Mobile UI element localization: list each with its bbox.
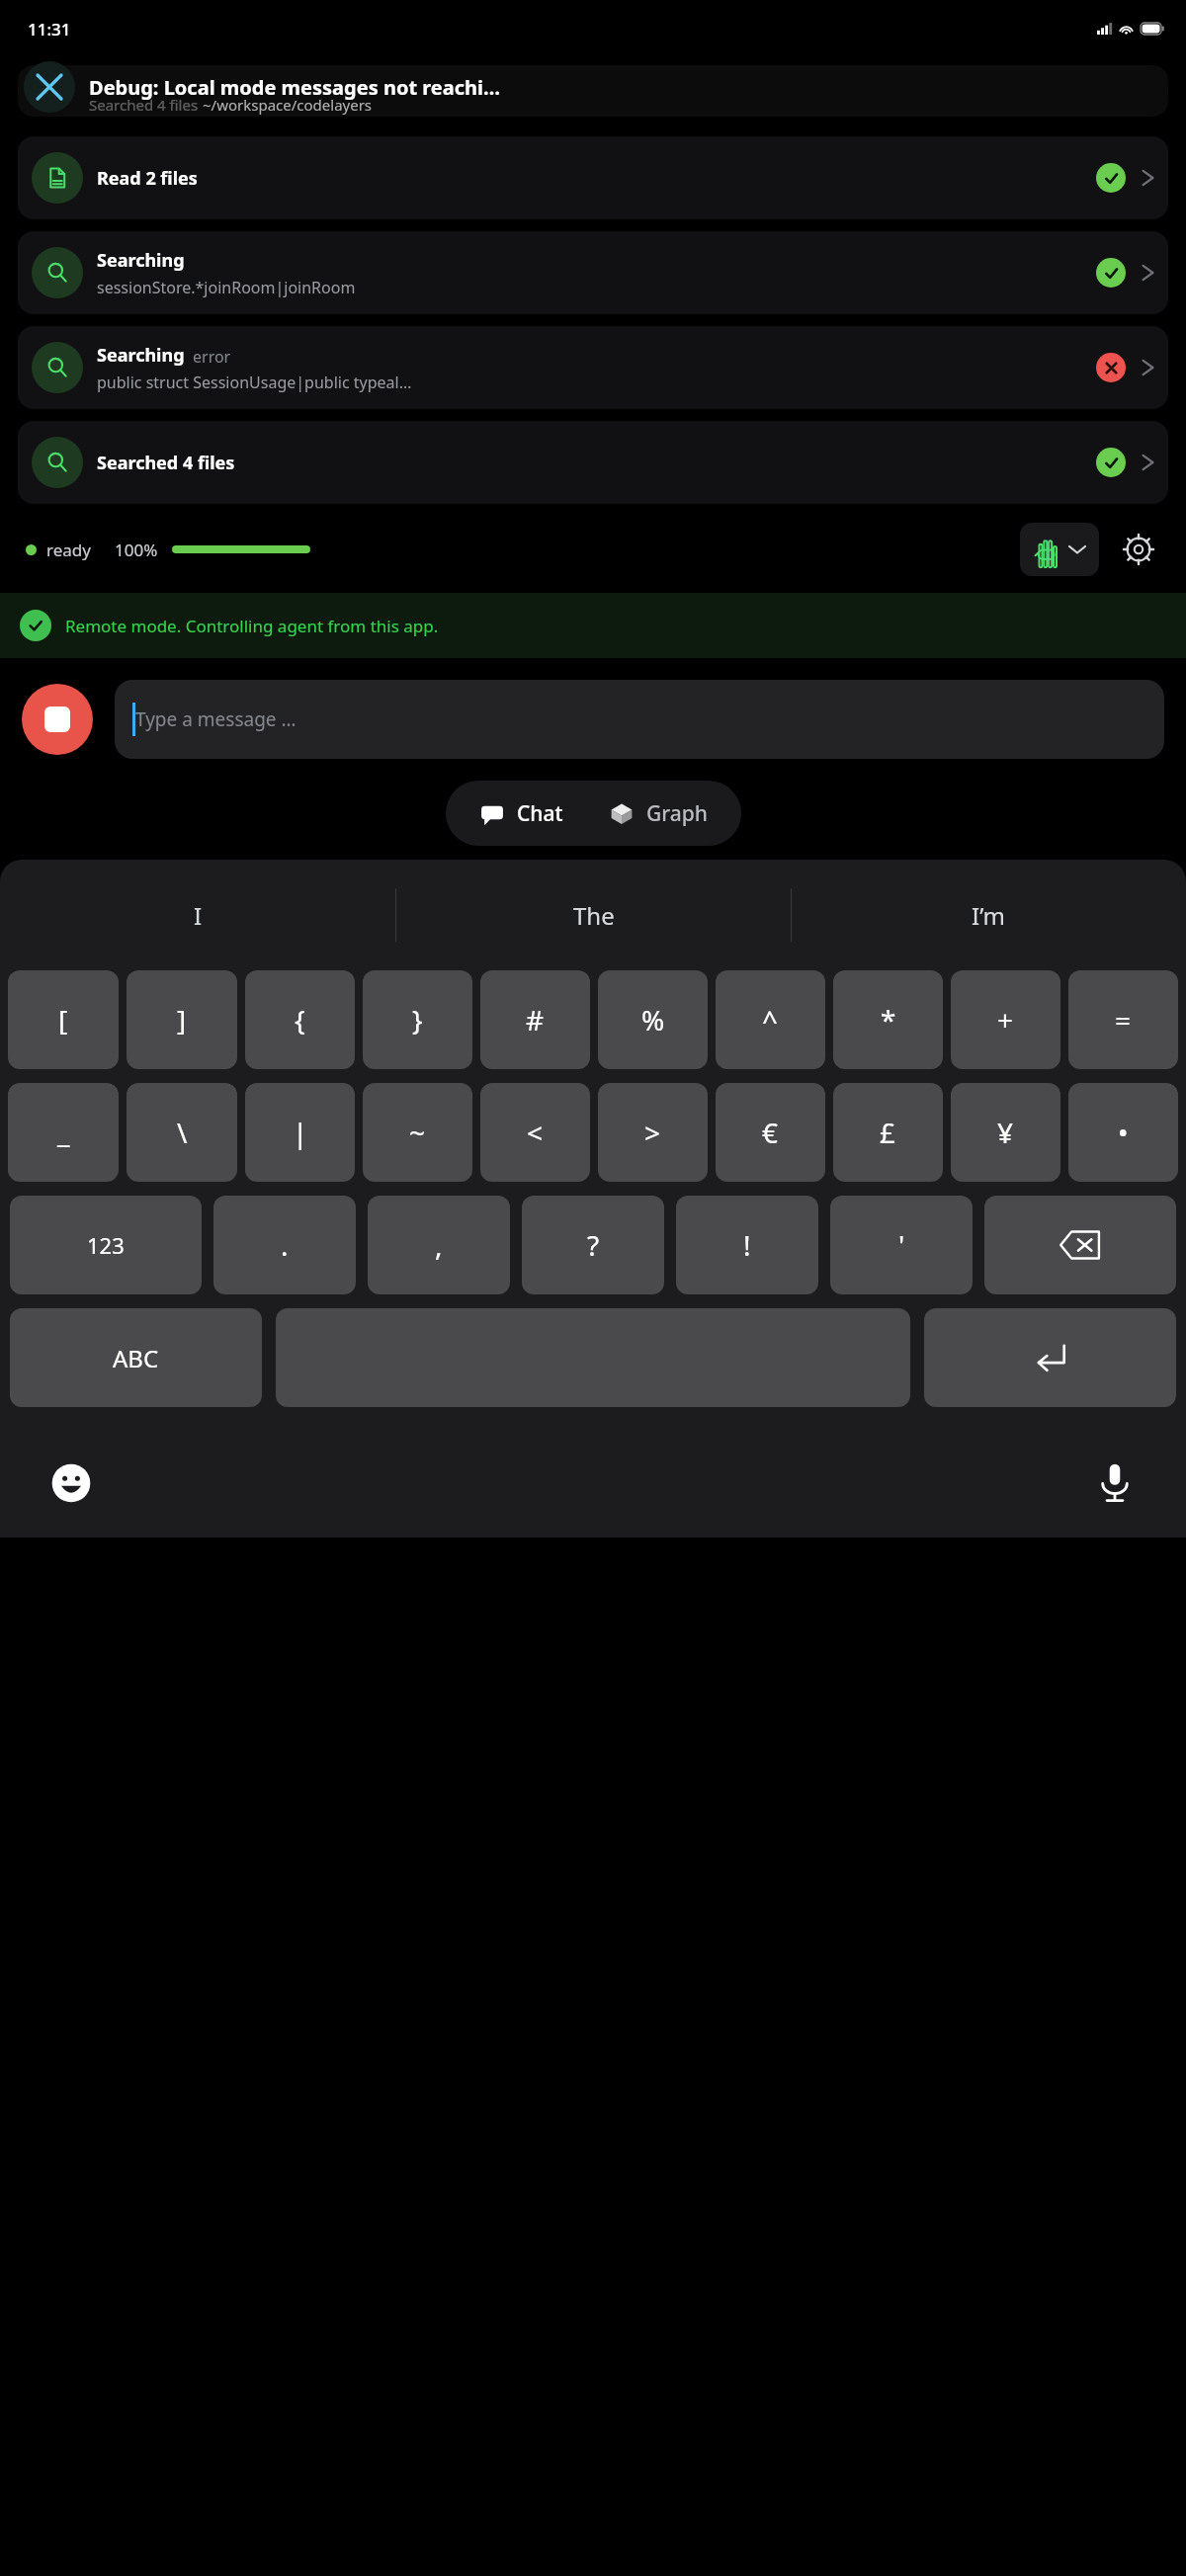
- staticText: Chat: [517, 799, 563, 828]
- button[interactable]: ': [830, 1196, 973, 1294]
- staticText: [: [58, 1001, 68, 1039]
- staticText: {: [295, 1001, 305, 1039]
- staticText: Debug: Local mode messages not reachi…: [89, 74, 501, 101]
- button[interactable]: %: [598, 970, 708, 1069]
- staticText: +: [997, 1001, 1014, 1039]
- button[interactable]: |: [245, 1083, 355, 1182]
- staticText: ready: [46, 539, 91, 561]
- button[interactable]: <: [480, 1083, 590, 1182]
- staticText: \: [177, 1114, 188, 1151]
- button[interactable]: +: [951, 970, 1060, 1069]
- button[interactable]: The: [396, 860, 791, 970]
- button[interactable]: 123: [10, 1196, 202, 1294]
- staticText: _: [57, 1114, 70, 1151]
- button[interactable]: €: [716, 1083, 825, 1182]
- staticText: ABC: [113, 1342, 159, 1374]
- staticText: <: [527, 1114, 544, 1151]
- staticText: Searched 4 files: [97, 451, 235, 475]
- button[interactable]: Voice input: [1087, 1455, 1143, 1511]
- button[interactable]: ABC: [10, 1308, 262, 1407]
- staticText: error: [193, 346, 231, 368]
- staticText: Searching: [97, 248, 185, 273]
- button[interactable]: Settings: [1117, 528, 1160, 571]
- button[interactable]: [1020, 523, 1099, 576]
- button[interactable]: ,: [368, 1196, 510, 1294]
- staticText: ]: [177, 1001, 187, 1039]
- staticText: 123: [87, 1230, 125, 1260]
- staticText: .: [281, 1226, 289, 1264]
- staticText: *: [881, 1001, 896, 1039]
- staticText: ~/workspace/codelayers: [203, 95, 373, 115]
- staticText: Searched 4 files: [89, 95, 199, 115]
- staticText: Graph: [646, 799, 708, 828]
- button[interactable]: *: [833, 970, 943, 1069]
- button[interactable]: Searching: [18, 326, 1168, 409]
- button[interactable]: Type a message …: [115, 680, 1164, 759]
- staticText: public struct SessionUsage|public typeal…: [97, 372, 412, 393]
- button[interactable]: .: [213, 1196, 356, 1294]
- button[interactable]: Backspace: [984, 1196, 1176, 1294]
- staticText: Remote mode. Controlling agent from this…: [65, 615, 439, 637]
- staticText: Searching: [97, 343, 185, 368]
- button[interactable]: >: [598, 1083, 708, 1182]
- staticText: £: [880, 1114, 896, 1151]
- staticText: €: [762, 1114, 779, 1151]
- button[interactable]: !: [676, 1196, 818, 1294]
- staticText: Read 2 files: [97, 166, 198, 191]
- staticText: |: [293, 1114, 308, 1151]
- staticText: ¥: [997, 1114, 1014, 1151]
- staticText: Type a message …: [135, 706, 296, 732]
- button[interactable]: I’m: [792, 860, 1186, 970]
- button[interactable]: ?: [522, 1196, 664, 1294]
- button[interactable]: #: [480, 970, 590, 1069]
- staticText: !: [743, 1226, 751, 1264]
- staticText: ^: [762, 1001, 779, 1039]
- button[interactable]: \: [127, 1083, 237, 1182]
- staticText: ,: [435, 1226, 443, 1264]
- button[interactable]: ]: [127, 970, 237, 1069]
- button[interactable]: Searching: [18, 231, 1168, 314]
- staticText: ': [898, 1226, 905, 1264]
- staticText: sessionStore.*joinRoom|joinRoom: [97, 277, 356, 298]
- button[interactable]: Space: [276, 1308, 910, 1407]
- staticText: •: [1118, 1114, 1129, 1151]
- button[interactable]: }: [363, 970, 472, 1069]
- staticText: 11:31: [28, 18, 71, 41]
- button[interactable]: {: [245, 970, 355, 1069]
- staticText: ?: [587, 1226, 600, 1264]
- button[interactable]: _: [8, 1083, 119, 1182]
- staticText: >: [644, 1114, 661, 1151]
- button[interactable]: Graph: [603, 793, 714, 834]
- staticText: }: [412, 1001, 423, 1039]
- button[interactable]: I: [0, 860, 395, 970]
- staticText: =: [1115, 1001, 1132, 1039]
- button[interactable]: •: [1068, 1083, 1178, 1182]
- button[interactable]: =: [1068, 970, 1178, 1069]
- button[interactable]: ¥: [951, 1083, 1060, 1182]
- staticText: The: [573, 899, 615, 932]
- button[interactable]: Chat: [473, 793, 569, 834]
- staticText: ~: [409, 1114, 426, 1151]
- staticText: I: [194, 899, 203, 932]
- button[interactable]: [: [8, 970, 119, 1069]
- button[interactable]: Close: [24, 61, 75, 113]
- button[interactable]: Stop: [22, 684, 93, 755]
- button[interactable]: Read 2 files: [18, 136, 1168, 219]
- button[interactable]: Emoji: [43, 1455, 99, 1511]
- button[interactable]: ~: [363, 1083, 472, 1182]
- staticText: %: [641, 1001, 665, 1039]
- button[interactable]: Searched 4 files: [18, 421, 1168, 504]
- staticText: #: [526, 1001, 545, 1039]
- button[interactable]: £: [833, 1083, 943, 1182]
- staticText: 100%: [115, 539, 158, 561]
- staticText: I’m: [972, 899, 1006, 932]
- button[interactable]: Enter: [924, 1308, 1176, 1407]
- button[interactable]: ^: [716, 970, 825, 1069]
